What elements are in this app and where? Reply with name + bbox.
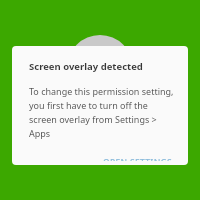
staticText: To change this permission setting, you f… bbox=[29, 85, 174, 139]
staticText: Screen overlay detected bbox=[29, 60, 143, 73]
staticText: OPEN SETTINGS bbox=[103, 157, 172, 161]
button[interactable]: OPEN SETTINGS bbox=[97, 153, 178, 165]
